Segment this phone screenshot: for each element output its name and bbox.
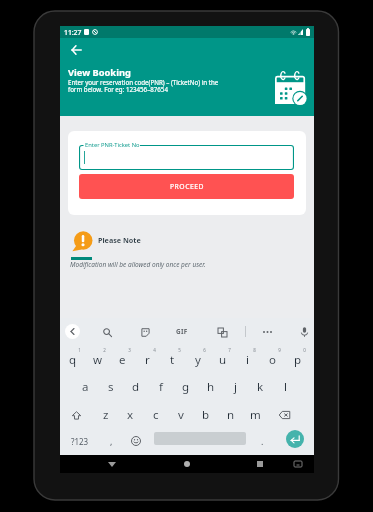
button[interactable]: c	[143, 401, 168, 429]
staticText: 3	[128, 347, 131, 353]
staticText: .	[261, 435, 264, 447]
staticText: z	[103, 407, 109, 423]
staticText: j	[234, 379, 237, 395]
button[interactable]: Enter	[286, 430, 304, 448]
button[interactable]: More options	[260, 325, 274, 339]
staticText: b	[202, 407, 210, 423]
button[interactable]: x	[118, 401, 143, 429]
button[interactable]: y	[185, 346, 210, 374]
staticText: 7	[228, 347, 231, 353]
staticText: y	[195, 352, 201, 368]
button[interactable]: r	[135, 346, 160, 374]
button[interactable]: Back	[65, 39, 87, 61]
button[interactable]: Voice input	[297, 325, 311, 339]
button[interactable]: d	[123, 373, 148, 401]
staticText: f	[159, 379, 163, 395]
button[interactable]: .	[254, 428, 270, 454]
button[interactable]: Enter PNR-Ticket No	[79, 145, 294, 170]
staticText: 11:27	[64, 28, 82, 37]
button[interactable]: GIF	[170, 325, 194, 338]
button[interactable]: Recent apps	[251, 455, 269, 473]
staticText: r	[145, 352, 150, 368]
button[interactable]: s	[98, 373, 123, 401]
button[interactable]: u	[210, 346, 235, 374]
button[interactable]: Emoji	[125, 428, 147, 454]
button[interactable]: z	[93, 401, 118, 429]
button[interactable]: ,	[101, 428, 122, 454]
staticText: a	[82, 379, 89, 395]
button[interactable]: ?123	[66, 428, 94, 454]
staticText: u	[219, 352, 227, 368]
button[interactable]: Backspace	[268, 401, 301, 429]
button[interactable]: Shift	[60, 401, 93, 429]
button[interactable]: Stickers	[138, 325, 152, 339]
staticText: Enter PNR-Ticket No	[85, 141, 140, 149]
button[interactable]: k	[248, 373, 273, 401]
button[interactable]: i	[235, 346, 260, 374]
button[interactable]: n	[218, 401, 243, 429]
staticText: w	[93, 352, 103, 368]
button[interactable]: Home	[178, 455, 196, 473]
button[interactable]: b	[193, 401, 218, 429]
staticText: h	[207, 379, 215, 395]
button[interactable]: t	[160, 346, 185, 374]
staticText: 8	[253, 347, 256, 353]
staticText: 0	[303, 347, 306, 353]
staticText: k	[257, 379, 264, 395]
button[interactable]: l	[273, 373, 298, 401]
staticText: 2	[103, 347, 106, 353]
staticText: t	[170, 352, 175, 368]
staticText: l	[284, 379, 287, 395]
button[interactable]: Switch keyboard	[289, 455, 307, 473]
staticText: 9	[278, 347, 281, 353]
staticText: 4	[153, 347, 156, 353]
button[interactable]: p	[285, 346, 310, 374]
staticText: p	[294, 352, 302, 368]
staticText: 5	[178, 347, 181, 353]
button[interactable]: Search	[100, 325, 114, 339]
staticText: v	[178, 407, 184, 423]
staticText: c	[153, 407, 159, 423]
staticText: o	[269, 352, 276, 368]
staticText: GIF	[176, 327, 188, 336]
staticText: 1	[78, 347, 81, 353]
button[interactable]: a	[73, 373, 98, 401]
button[interactable]: e	[110, 346, 135, 374]
staticText: s	[108, 379, 114, 395]
staticText: Modification will be allowed only once p…	[70, 260, 206, 269]
staticText: PROCEED	[170, 182, 204, 191]
button[interactable]: Translate	[215, 325, 229, 339]
button[interactable]: j	[223, 373, 248, 401]
staticText: q	[69, 352, 77, 368]
staticText: i	[246, 352, 249, 368]
staticText: ,	[110, 435, 113, 447]
staticText: e	[119, 352, 126, 368]
button[interactable]: PROCEED	[79, 174, 294, 199]
button[interactable]: Please Note	[98, 235, 141, 245]
staticText: View Booking	[68, 66, 131, 79]
staticText: Enter your reservation code(PNR) – (Tick…	[68, 78, 219, 93]
staticText: x	[127, 407, 134, 423]
staticText: n	[227, 407, 235, 423]
staticText: g	[182, 379, 190, 395]
staticText: 6	[203, 347, 206, 353]
button[interactable]: g	[173, 373, 198, 401]
button[interactable]: v	[168, 401, 193, 429]
staticText: ?123	[71, 436, 89, 447]
staticText: m	[250, 407, 261, 423]
button[interactable]: w	[85, 346, 110, 374]
button[interactable]: f	[148, 373, 173, 401]
button[interactable]: Expand toolbar	[65, 324, 80, 339]
button[interactable]: h	[198, 373, 223, 401]
button[interactable]: o	[260, 346, 285, 374]
button[interactable]: m	[243, 401, 268, 429]
button[interactable]: q	[60, 346, 85, 374]
button[interactable]: Back	[103, 455, 121, 473]
staticText: d	[132, 379, 140, 395]
